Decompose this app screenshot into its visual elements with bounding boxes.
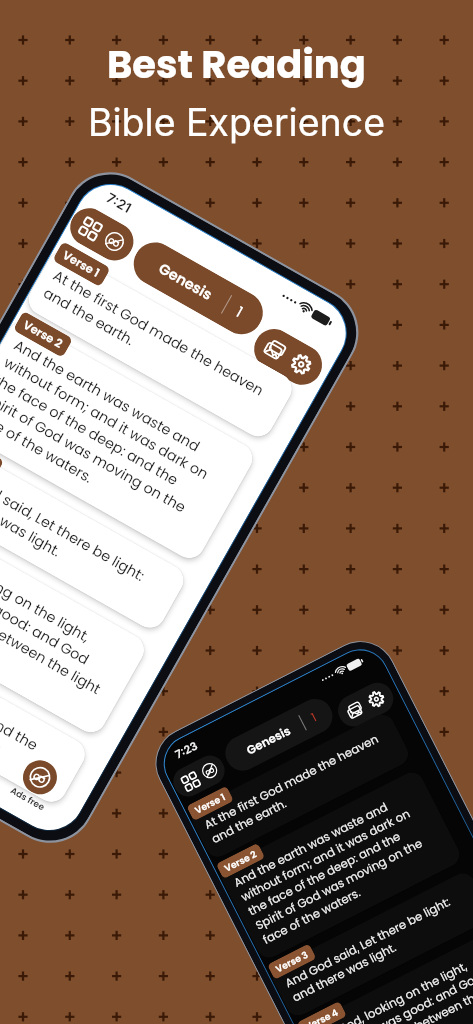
staticText: the face of the deep: and the	[0, 370, 182, 490]
staticText: Bible Experience	[88, 100, 385, 145]
button[interactable]: Verse 4	[296, 1001, 347, 1024]
button[interactable]: Verse 2	[13, 311, 73, 358]
button[interactable]: And the earth was waste and	[0, 316, 258, 564]
staticText: Verse 3	[273, 948, 310, 975]
button[interactable]: And the earth was waste and	[217, 768, 464, 962]
staticText: Verse 2	[20, 317, 66, 352]
other: Images	[344, 699, 366, 721]
staticText: And God said, Let there be light:	[0, 457, 149, 586]
button[interactable]: Books	[63, 201, 140, 267]
staticText: and there was light.	[290, 939, 399, 1006]
staticText: Spirit of God was moving on the	[0, 387, 190, 518]
button[interactable]: Naming the light, Day, and the	[341, 1013, 473, 1024]
staticText: And God, looking on the light,	[0, 527, 94, 647]
button[interactable]: Books	[168, 750, 230, 802]
staticText: And the earth was waste and	[10, 335, 204, 456]
staticText: Ads free	[8, 784, 47, 814]
other: Remove ads	[199, 760, 220, 781]
button[interactable]: Genesis	[126, 235, 271, 342]
button[interactable]: Verse 1	[186, 786, 234, 821]
staticText: saw that it was good: and God	[0, 544, 93, 670]
button[interactable]: And God said, Let there be light:	[0, 438, 189, 634]
staticText: made a division between the light	[326, 974, 473, 1024]
button[interactable]: Images	[247, 322, 329, 392]
staticText: And the earth was waste and	[231, 799, 391, 891]
staticText: At the first God made the heaven	[201, 730, 382, 833]
other: Images	[261, 336, 289, 363]
staticText: and the earth.	[209, 796, 289, 847]
staticText: dark, Night. And there was	[0, 648, 6, 758]
staticText: and the earth.	[40, 283, 138, 350]
staticText: And God said, Let there be light:	[282, 894, 453, 991]
staticText: Genesis	[231, 716, 306, 765]
button[interactable]: Images	[333, 677, 399, 732]
staticText: face of the waters.	[260, 884, 364, 948]
other: Books	[180, 771, 200, 791]
button[interactable]: At the first God made the heaven	[23, 247, 297, 442]
button[interactable]: Genesis	[219, 693, 338, 777]
button[interactable]: Verse 1	[52, 241, 111, 287]
staticText: Verse 1	[192, 790, 228, 817]
button[interactable]: Ads free	[8, 753, 65, 814]
staticText: Verse 2	[222, 847, 259, 875]
other: Settings	[287, 351, 315, 378]
staticText: the face of the deep: and the	[245, 828, 403, 919]
staticText: Genesis	[140, 250, 231, 313]
staticText: made a division between the light	[0, 561, 104, 699]
staticText: And God, looking on the light,	[312, 958, 470, 1024]
staticText: Verse 4	[303, 1005, 341, 1024]
button[interactable]: And God, looking on the light,	[297, 927, 473, 1024]
staticText: without form; and it was dark on	[238, 805, 413, 905]
staticText: Verse 1	[60, 247, 103, 281]
staticText: 1	[232, 301, 247, 322]
staticText: and there was light.	[0, 474, 65, 562]
staticText: without form; and it was dark on	[0, 353, 212, 484]
button[interactable]: Verse 2	[216, 843, 265, 879]
button[interactable]: And God said, Let there be light:	[268, 869, 473, 1020]
other: Settings	[366, 688, 387, 710]
staticText: Best Reading	[107, 38, 366, 92]
button[interactable]: Naming the light, Day, and the	[0, 612, 91, 808]
other: Books	[78, 215, 102, 240]
other: Remove ads	[101, 228, 128, 255]
staticText: 7:23	[173, 738, 200, 761]
staticText: Naming the light, Day, and the	[0, 631, 41, 755]
staticText: 7:21	[104, 189, 134, 216]
staticText: 1	[308, 709, 319, 726]
button[interactable]: And God, looking on the light,	[0, 508, 150, 738]
staticText: saw that it was good: and God	[319, 968, 473, 1024]
staticText: Spirit of God was moving on the	[253, 835, 426, 933]
staticText: At the first God made the heaven	[50, 265, 267, 401]
button[interactable]: Verse 3	[267, 943, 317, 980]
staticText: face of the waters.	[0, 405, 96, 488]
button[interactable]: Verse 3	[0, 433, 4, 480]
button[interactable]: At the first God made the heaven	[187, 710, 413, 861]
